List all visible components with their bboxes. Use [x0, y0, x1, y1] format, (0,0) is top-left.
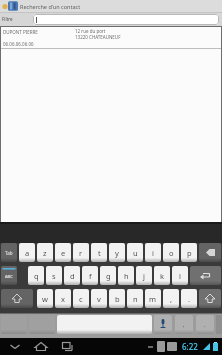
staticText: y	[115, 248, 119, 258]
button[interactable]: p	[181, 243, 197, 262]
staticText: t	[98, 248, 101, 258]
button[interactable]	[33, 14, 219, 25]
button[interactable]: u	[127, 243, 143, 262]
staticText: 13220 CHATEAUNEUF	[75, 34, 121, 40]
staticText: 12 rue du port	[75, 28, 106, 34]
staticText: DUPONT PIERRE	[3, 29, 38, 35]
button[interactable]: ,	[163, 289, 179, 308]
button[interactable]: .	[181, 289, 197, 308]
button[interactable]: s	[46, 266, 62, 285]
button[interactable]: y	[109, 243, 125, 262]
staticText: c	[79, 294, 83, 304]
button[interactable]	[1, 289, 33, 308]
button[interactable]: b	[109, 289, 125, 308]
staticText: r	[79, 248, 83, 258]
button[interactable]	[31, 338, 51, 355]
staticText: h	[124, 271, 129, 281]
staticText: w	[42, 294, 48, 304]
button[interactable]	[190, 266, 221, 285]
staticText: n	[133, 294, 138, 304]
staticText: o	[169, 248, 174, 258]
button[interactable]: e	[55, 243, 71, 262]
button[interactable]	[199, 243, 221, 262]
staticText: f	[89, 271, 92, 281]
button[interactable]: r	[73, 243, 89, 262]
button[interactable]: g	[100, 266, 116, 285]
button[interactable]: q	[28, 266, 44, 285]
staticText: Recherche d'un contact	[20, 3, 81, 10]
staticText: j	[143, 271, 145, 281]
button[interactable]	[0, 0, 222, 12]
button[interactable]: t	[91, 243, 107, 262]
staticText: 06.06.06.06.06	[3, 41, 34, 47]
staticText: .	[188, 294, 191, 304]
staticText: ,	[170, 294, 173, 304]
staticText: p	[187, 248, 192, 258]
button[interactable]: w	[37, 289, 53, 308]
button[interactable]	[29, 315, 55, 334]
button[interactable]	[5, 338, 25, 355]
staticText: d	[70, 271, 75, 281]
button[interactable]	[57, 315, 152, 334]
button[interactable]: h	[118, 266, 134, 285]
staticText: ABC	[5, 274, 13, 279]
button[interactable]: i	[145, 243, 161, 262]
staticText: m	[149, 294, 157, 304]
button[interactable]: x	[55, 289, 71, 308]
button[interactable]: d	[64, 266, 80, 285]
staticText: b	[115, 294, 120, 304]
staticText: a	[25, 248, 30, 258]
button[interactable]: j	[136, 266, 152, 285]
button[interactable]: .	[196, 315, 214, 334]
staticText: Filtre	[2, 16, 13, 22]
button[interactable]: ABC	[1, 266, 17, 285]
button[interactable]: l	[172, 266, 188, 285]
button[interactable]: a	[19, 243, 35, 262]
staticText: x	[61, 294, 65, 304]
staticText: s	[52, 271, 56, 281]
staticText: 6:22	[182, 341, 198, 352]
button[interactable]: m	[145, 289, 161, 308]
button[interactable]	[1, 27, 221, 48]
staticText: u	[133, 248, 138, 258]
button[interactable]: c	[73, 289, 89, 308]
staticText: k	[160, 271, 165, 281]
button[interactable]: Tab	[1, 243, 17, 262]
button[interactable]: f	[82, 266, 98, 285]
button[interactable]: ,	[175, 315, 193, 334]
staticText: ,	[183, 321, 185, 329]
button[interactable]: k	[154, 266, 170, 285]
staticText: v	[97, 294, 101, 304]
staticText: l	[179, 271, 181, 281]
button[interactable]: v	[91, 289, 107, 308]
staticText: .	[204, 321, 206, 329]
staticText: e	[61, 248, 66, 258]
button[interactable]: n	[127, 289, 143, 308]
button[interactable]	[154, 315, 172, 334]
button[interactable]	[57, 338, 77, 355]
staticText: z	[43, 248, 47, 258]
staticText: q	[34, 271, 39, 281]
staticText: g	[106, 271, 111, 281]
staticText: i	[152, 248, 154, 258]
staticText: Tab	[5, 250, 13, 256]
button[interactable]: z	[37, 243, 53, 262]
button[interactable]: o	[163, 243, 179, 262]
button[interactable]	[1, 315, 27, 334]
button[interactable]	[199, 289, 221, 308]
